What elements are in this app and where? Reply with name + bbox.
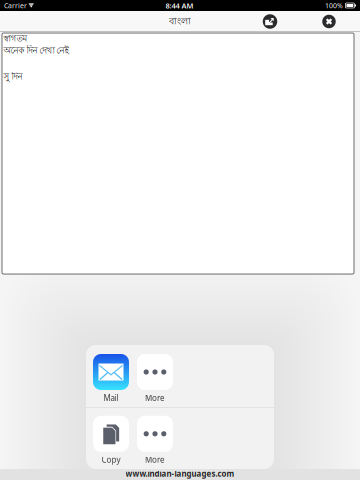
staticText: 8:44 AM bbox=[165, 0, 193, 11]
button[interactable]: Copy bbox=[89, 416, 133, 465]
staticText: বাংলা bbox=[169, 15, 191, 28]
button[interactable]: Mail bbox=[89, 354, 133, 403]
staticText: More bbox=[145, 454, 165, 465]
button[interactable]: More bbox=[133, 416, 177, 465]
staticText: Mail bbox=[103, 392, 118, 403]
button[interactable]: More bbox=[133, 354, 177, 403]
staticText: 100% bbox=[325, 1, 343, 10]
staticText: স্বাগতম bbox=[3, 33, 27, 45]
button[interactable]: Close bbox=[319, 11, 339, 31]
staticText: More bbox=[145, 392, 165, 403]
staticText: Copy bbox=[101, 454, 120, 465]
staticText: সু দিন bbox=[3, 71, 22, 83]
staticText: www.indian-languages.com bbox=[125, 468, 234, 479]
staticText: Carrier bbox=[4, 1, 27, 10]
button[interactable]: Share bbox=[260, 11, 280, 31]
staticText: অনেক দিন দেখা নেই bbox=[3, 45, 68, 57]
